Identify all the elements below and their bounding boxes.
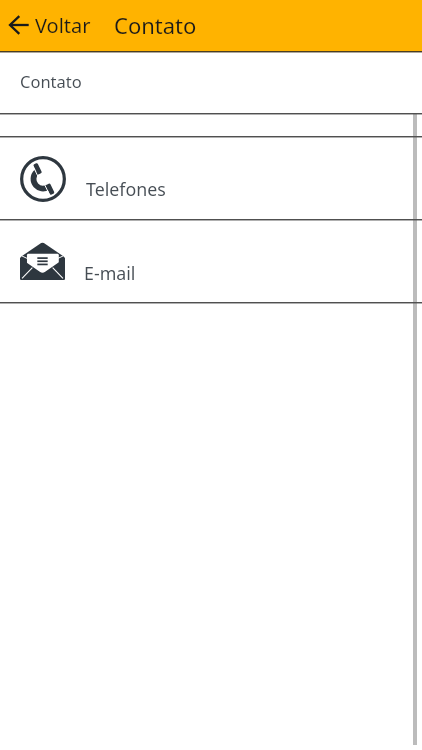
staticText: E-mail [84, 261, 136, 285]
button[interactable]: E-mail [0, 221, 422, 302]
staticText: Contato [20, 70, 82, 92]
button[interactable]: Voltar [0, 12, 95, 39]
button[interactable]: Telefones [0, 138, 422, 219]
staticText: Telefones [86, 177, 166, 201]
staticText: Voltar [35, 12, 91, 39]
staticText: Contato [114, 10, 197, 40]
